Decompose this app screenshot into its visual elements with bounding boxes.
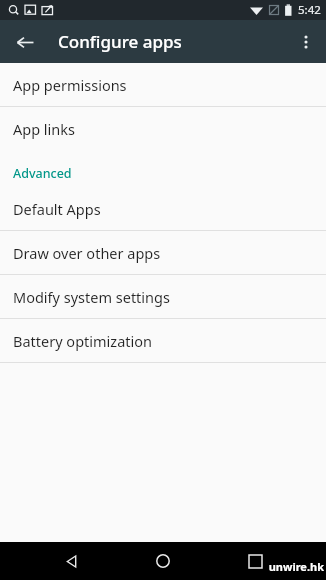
button[interactable]: App permissions [0, 63, 326, 106]
staticText: Draw over other apps [13, 243, 161, 263]
staticText: Default Apps [13, 199, 101, 219]
staticText: Advanced [13, 165, 72, 182]
button[interactable]: Home [146, 544, 180, 578]
button[interactable]: Back [55, 545, 87, 577]
button[interactable]: More options [290, 26, 322, 58]
button[interactable]: Default Apps [0, 187, 326, 230]
staticText: unwire.hk [268, 559, 324, 574]
button[interactable]: Battery optimization [0, 319, 326, 362]
staticText: App links [13, 119, 76, 139]
button[interactable]: Navigate up [9, 26, 41, 58]
staticText: Battery optimization [13, 331, 152, 351]
button[interactable]: Draw over other apps [0, 231, 326, 274]
button[interactable]: Modify system settings [0, 275, 326, 318]
staticText: Modify system settings [13, 287, 170, 307]
button[interactable]: App links [0, 107, 326, 150]
staticText: Configure apps [58, 30, 182, 53]
staticText: App permissions [13, 75, 127, 95]
staticText: 5:42 [298, 2, 321, 18]
button[interactable]: Recent apps [239, 545, 271, 577]
